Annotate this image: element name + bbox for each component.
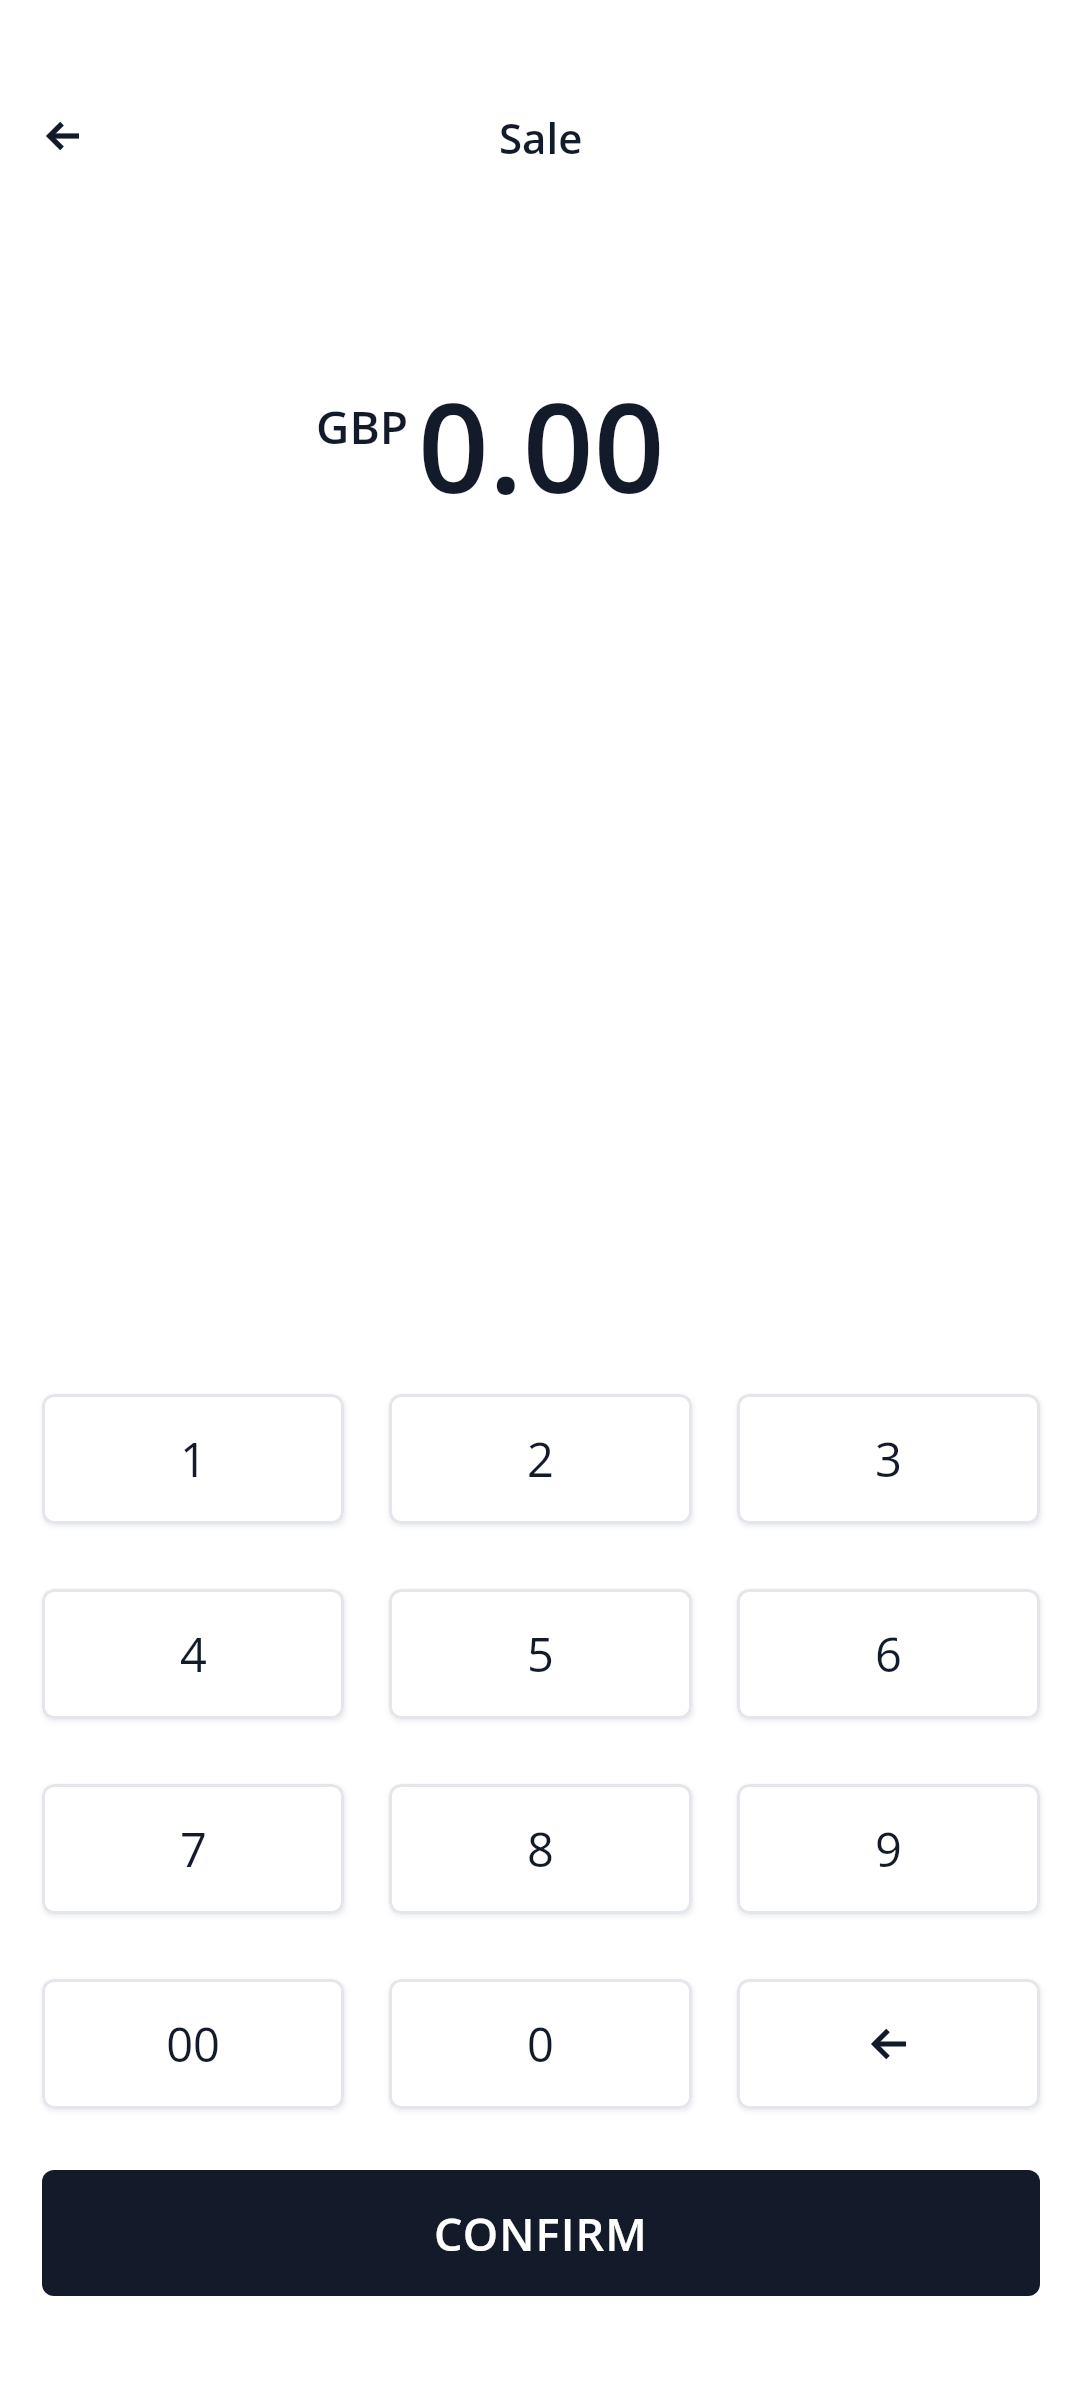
staticText: 9: [875, 1817, 902, 1881]
button[interactable]: Delete: [737, 1979, 1040, 2109]
button[interactable]: 0: [389, 1979, 692, 2109]
button[interactable]: 2: [389, 1394, 692, 1524]
button[interactable]: 9: [737, 1784, 1040, 1914]
staticText: 5: [527, 1622, 554, 1686]
staticText: 00: [166, 2012, 220, 2076]
button[interactable]: 4: [42, 1589, 344, 1719]
staticText: 3: [875, 1427, 902, 1491]
staticText: 7: [180, 1817, 207, 1881]
button[interactable]: CONFIRM: [42, 2170, 1040, 2296]
staticText: 4: [180, 1622, 207, 1686]
staticText: Sale: [499, 109, 583, 166]
button[interactable]: 1: [42, 1394, 344, 1524]
button[interactable]: 00: [42, 1979, 344, 2109]
staticText: 8: [527, 1817, 554, 1881]
staticText: CONFIRM: [434, 2203, 648, 2264]
staticText: 2: [527, 1427, 554, 1491]
button[interactable]: 8: [389, 1784, 692, 1914]
staticText: 0: [527, 2012, 554, 2076]
button[interactable]: 3: [737, 1394, 1040, 1524]
button[interactable]: 5: [389, 1589, 692, 1719]
staticText: GBP: [316, 395, 409, 458]
staticText: 6: [875, 1622, 902, 1686]
button[interactable]: 6: [737, 1589, 1040, 1719]
staticText: 0.00: [418, 360, 665, 529]
staticText: 1: [180, 1427, 207, 1491]
button[interactable]: 7: [42, 1784, 344, 1914]
button[interactable]: Back: [23, 96, 103, 176]
